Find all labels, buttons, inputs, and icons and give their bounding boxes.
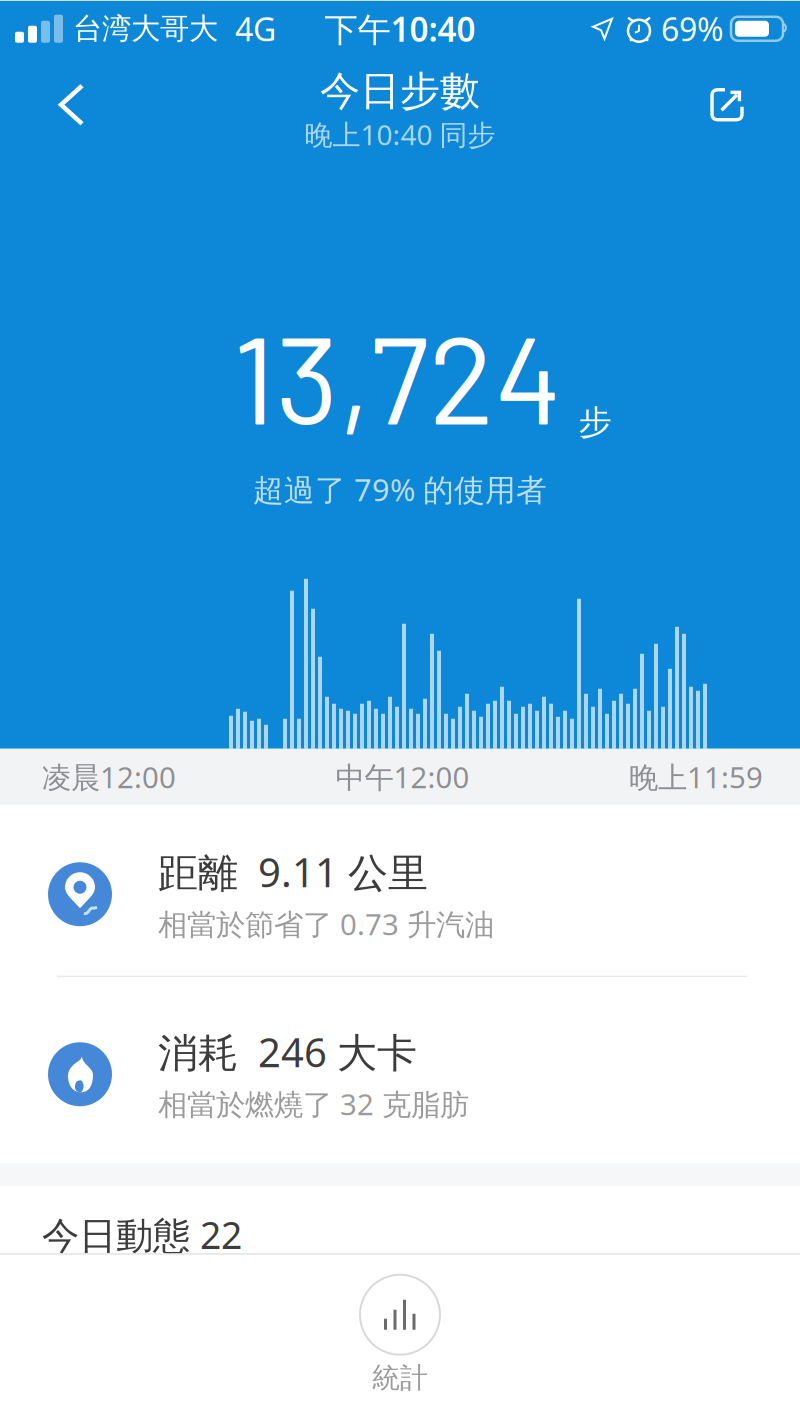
staticText: 相當於燃燒了 32 克脂肪 [158,1084,469,1123]
button[interactable]: 消耗 246 大卡 [0,977,800,1163]
staticText: 晚上11:59 [629,757,763,796]
staticText: 69% [661,7,724,50]
button[interactable] [0,84,86,126]
staticText: 中午12:00 [335,757,469,796]
button[interactable]: 距離 9.11 公里 [0,805,800,976]
staticText: 下午10:40 [324,7,475,51]
button[interactable] [710,88,800,122]
staticText: 今日步數 [320,67,480,116]
staticText: 今日動態 22 [42,1210,242,1259]
staticText: 相當於節省了 0.73 升汽油 [158,904,494,943]
staticText: 統計 [372,1361,428,1395]
button[interactable]: 統計 [360,1255,440,1395]
staticText: 13,724 [232,302,562,449]
staticText: 4G [235,7,276,50]
staticText: 台湾大哥大 [73,11,218,47]
staticText: 距離 9.11 公里 [158,845,428,898]
staticText: 凌晨12:00 [42,757,176,796]
staticText: 超過了 79% 的使用者 [253,469,547,510]
staticText: 步 [578,402,611,443]
staticText: 消耗 246 大卡 [158,1025,417,1078]
staticText: 晚上10:40 同步 [304,116,495,153]
